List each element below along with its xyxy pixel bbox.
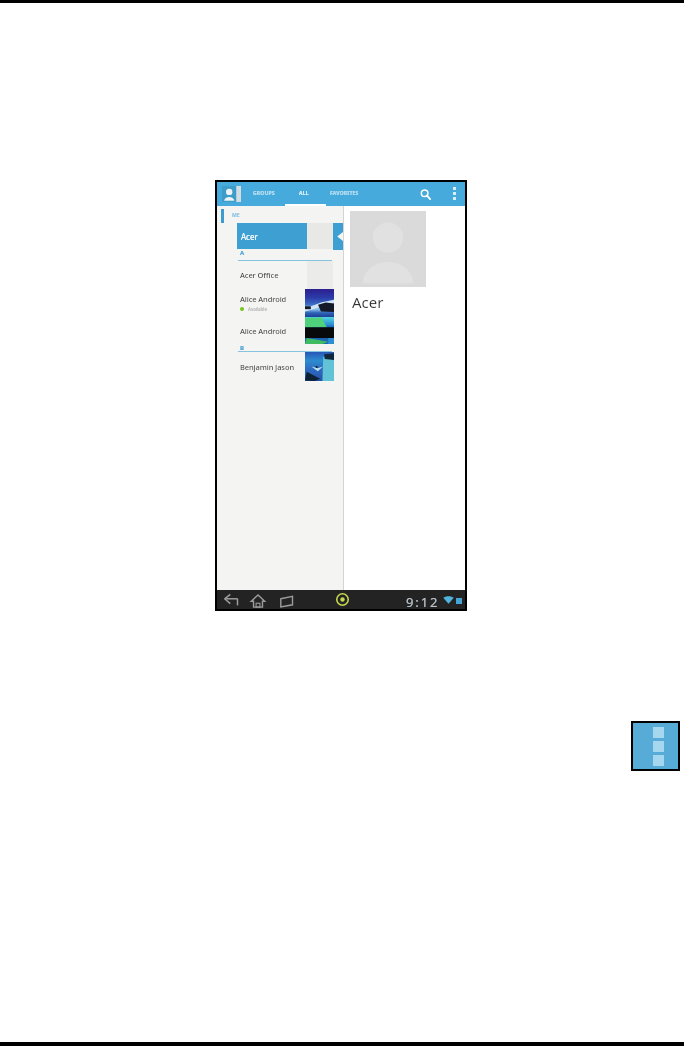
staticText: Alice Android <box>240 326 287 336</box>
button[interactable]: Screenshot <box>335 592 350 607</box>
button[interactable]: Acer <box>217 223 343 249</box>
button[interactable]: Alice Android <box>217 289 343 317</box>
button[interactable]: Back <box>222 593 240 607</box>
staticText: FAVORITES <box>330 190 359 197</box>
button[interactable]: More options <box>447 186 461 200</box>
button[interactable]: Search <box>417 186 433 202</box>
staticText: B <box>240 344 244 351</box>
button[interactable]: Contacts <box>222 186 241 202</box>
button[interactable]: Home <box>249 592 267 607</box>
staticText: Acer <box>352 292 384 312</box>
staticText: Available <box>248 306 267 312</box>
staticText: Acer <box>241 231 258 242</box>
staticText: GROUPS <box>253 190 275 197</box>
button[interactable]: More options <box>633 723 678 769</box>
staticText: 9:12 <box>406 593 440 611</box>
staticText: Alice Android <box>240 294 287 304</box>
staticText: ME <box>232 212 240 219</box>
staticText: Benjamin Jason <box>240 362 295 372</box>
button[interactable]: Alice Android <box>217 317 343 344</box>
staticText: ALL <box>299 190 309 197</box>
staticText: Acer Office <box>240 270 279 280</box>
button[interactable]: Benjamin Jason <box>217 352 343 381</box>
button[interactable]: Acer Office <box>217 261 343 289</box>
button[interactable]: Recent apps <box>277 593 295 607</box>
staticText: A <box>240 249 245 257</box>
